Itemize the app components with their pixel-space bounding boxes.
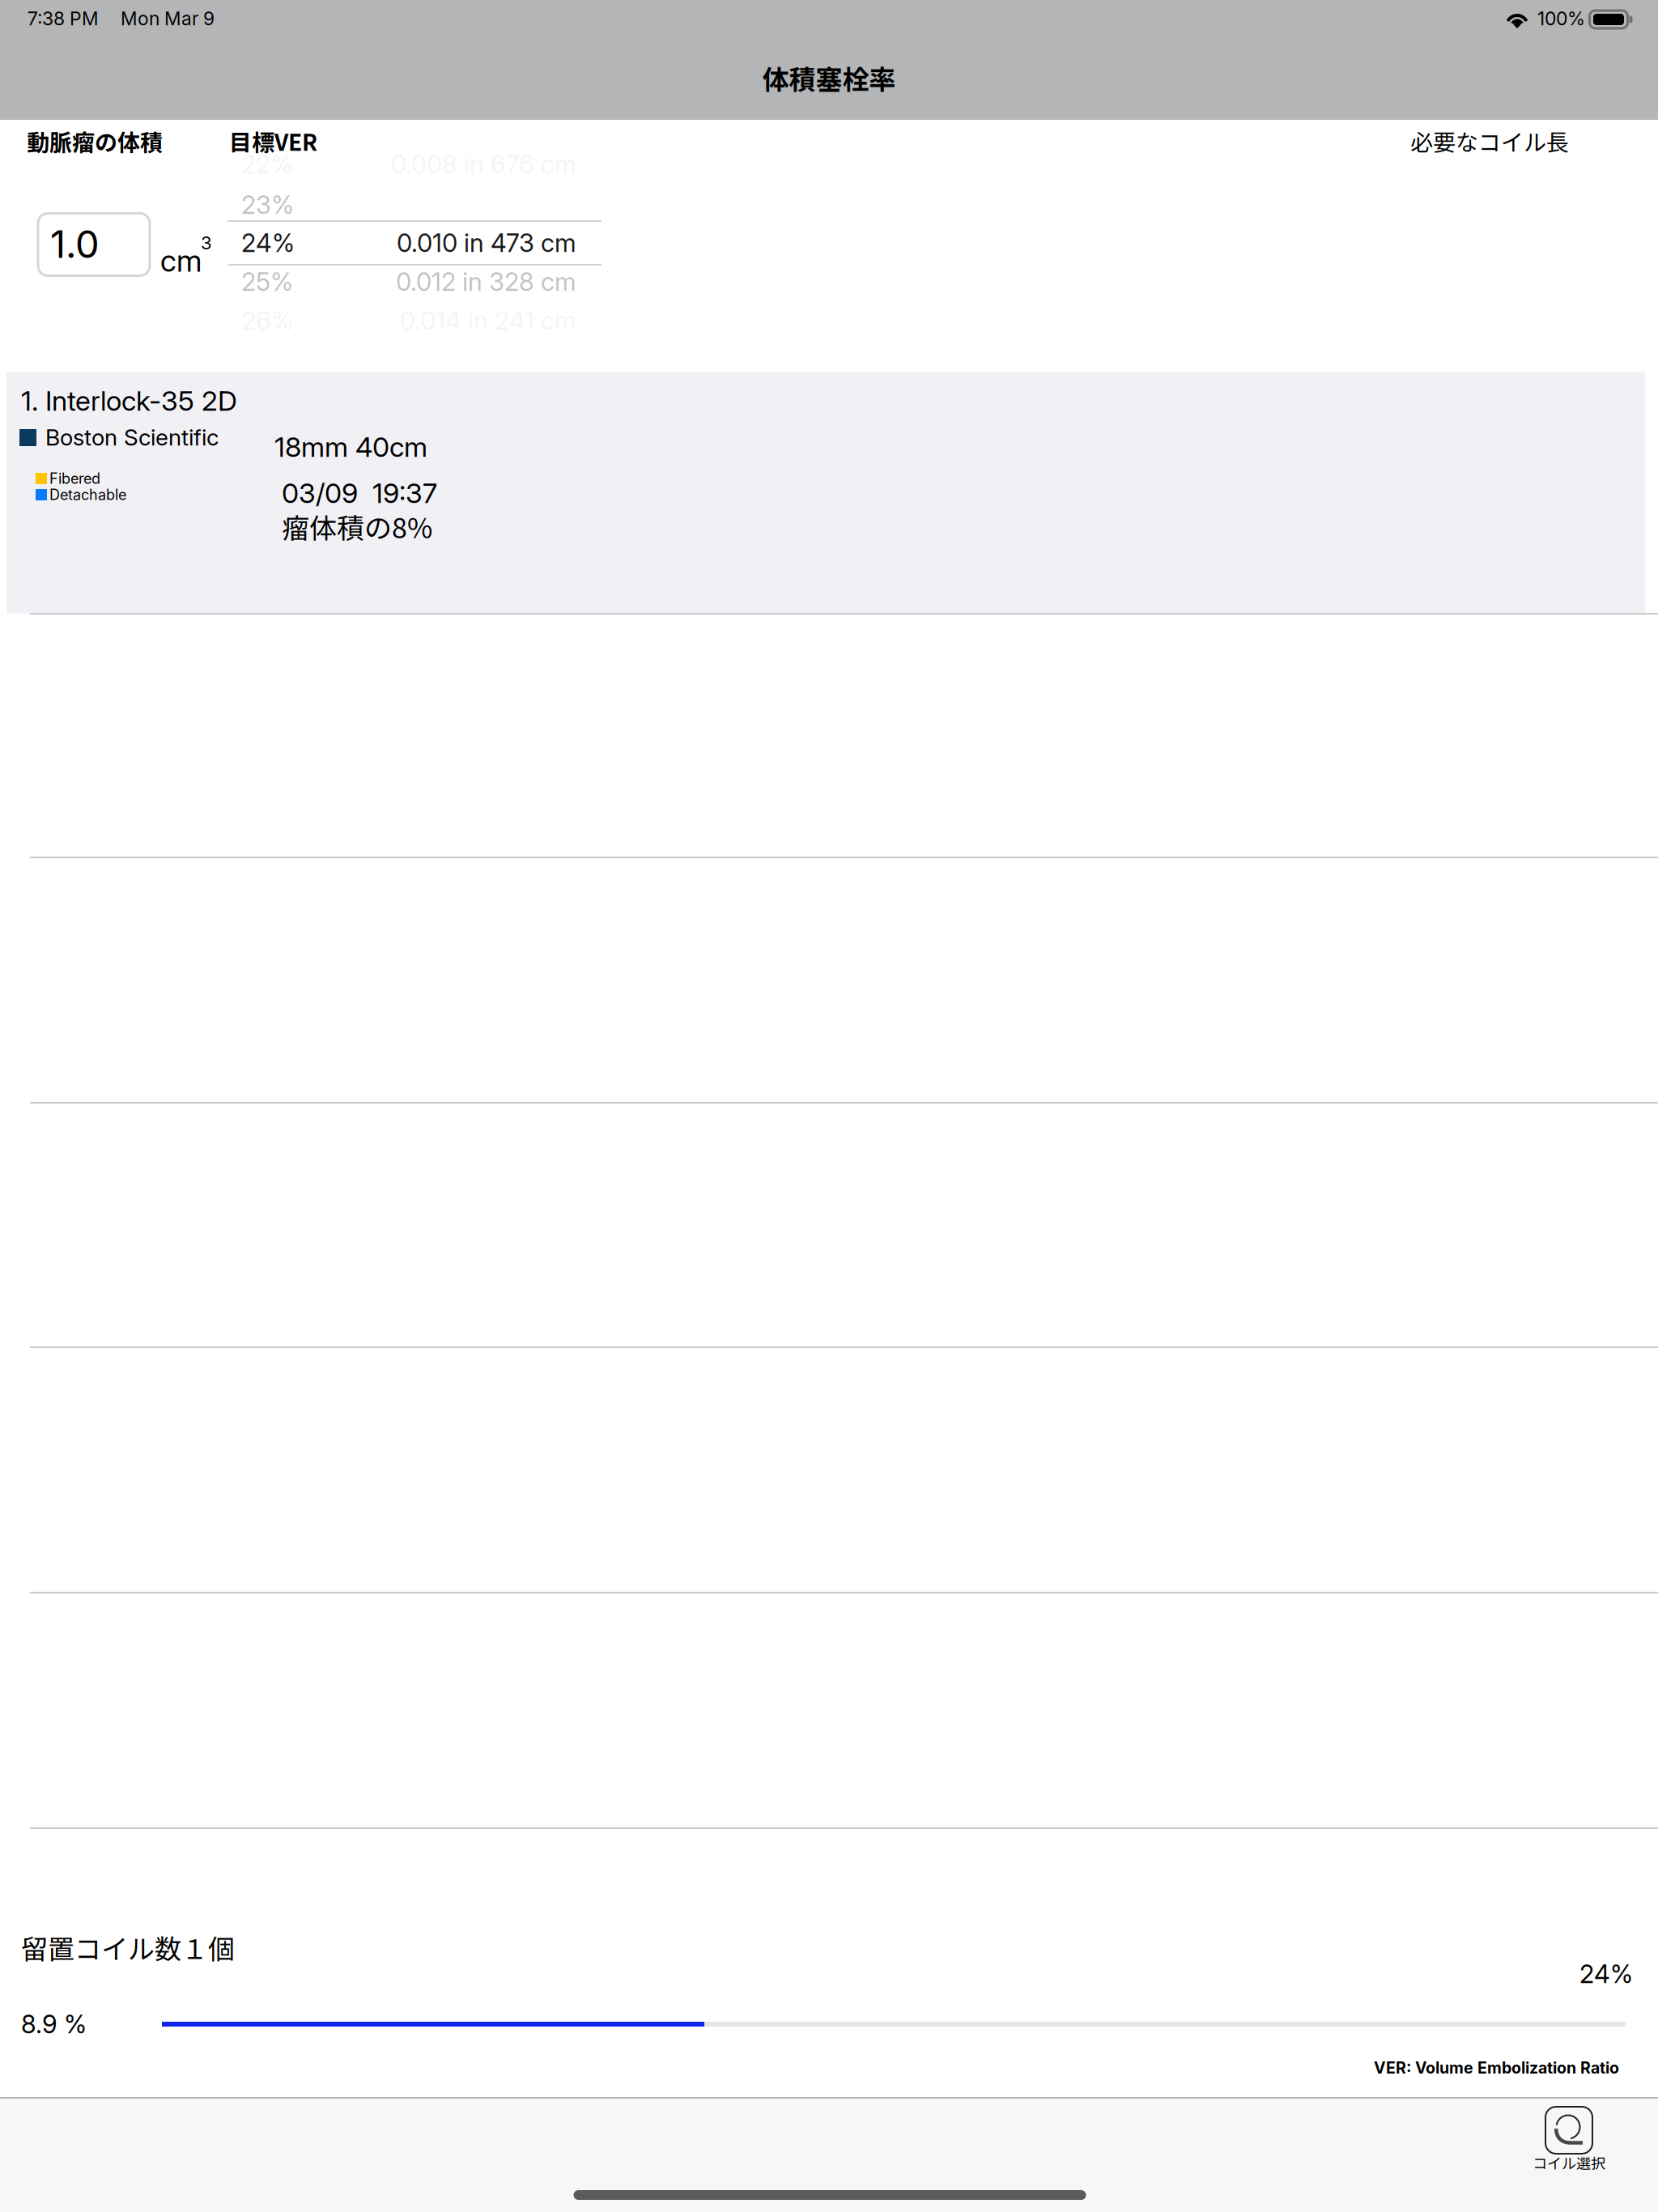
staticText: 24% [1579, 1959, 1633, 1989]
staticText: 0.008 in 676 cm [391, 149, 576, 180]
staticText: Mon Mar 9 [121, 7, 215, 30]
staticText: Detachable [49, 486, 126, 504]
staticText: 目標VER [229, 124, 317, 157]
staticText: 1. Interlock-35 2D [21, 384, 237, 417]
staticText: 26% [241, 305, 294, 336]
staticText: 24% [241, 228, 295, 258]
staticText: 必要なコイル長 [1410, 124, 1569, 157]
staticText: VER: Volume Embolization Ratio [1374, 2058, 1619, 2077]
staticText: cm [160, 243, 202, 279]
staticText: 03/09 19:37 [282, 476, 437, 510]
staticText: 25% [241, 267, 293, 297]
staticText: 23% [241, 190, 294, 220]
staticText: 18mm 40cm [274, 430, 427, 464]
staticText: 0.010 in 473 cm [397, 228, 576, 258]
staticText: 7:38 PM [28, 7, 99, 30]
staticText: Fibered [49, 470, 100, 487]
staticText: 体積塞栓率 [762, 58, 896, 97]
staticText: 8.9 % [21, 2009, 87, 2039]
staticText: 動脈瘤の体積 [27, 124, 163, 157]
staticText: コイル選択 [1533, 2152, 1605, 2173]
staticText: 0.012 in 328 cm [396, 267, 576, 297]
button[interactable]: コイル選択 [1504, 2098, 1634, 2179]
staticText: 3 [201, 232, 212, 254]
staticText: 22% [241, 149, 293, 180]
button[interactable]: 1.0 [38, 213, 150, 276]
staticText: 留置コイル数１個 [21, 1928, 235, 1967]
button[interactable]: 1. Interlock-35 2D [6, 372, 1645, 614]
staticText: 0.014 in 241 cm [400, 305, 576, 336]
staticText: 100% [1537, 7, 1585, 30]
staticText: Boston Scientific [45, 424, 219, 451]
staticText: 瘤体積の8% [282, 506, 432, 546]
staticText: 1.0 [50, 221, 100, 267]
